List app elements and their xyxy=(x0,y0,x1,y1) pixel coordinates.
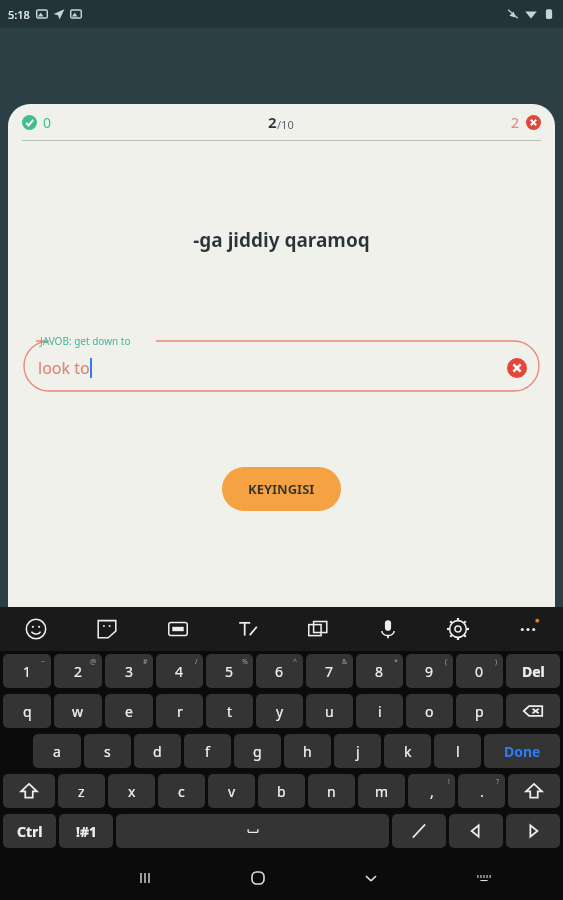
staticText: !#1 xyxy=(76,822,97,841)
button[interactable]: . xyxy=(458,774,505,808)
button[interactable]: x xyxy=(108,774,155,808)
staticText: u xyxy=(325,702,334,721)
button[interactable]: 3 xyxy=(105,654,153,688)
staticText: ( xyxy=(445,657,448,667)
staticText: 5:18 xyxy=(8,7,30,22)
button[interactable]: !#1 xyxy=(59,814,113,848)
button[interactable]: Recents xyxy=(89,856,201,900)
button[interactable]: Right xyxy=(506,814,560,848)
button[interactable]: Del xyxy=(506,654,560,688)
staticText: y xyxy=(276,702,284,721)
staticText: x xyxy=(128,782,136,801)
button[interactable]: Home xyxy=(201,856,314,900)
staticText: s xyxy=(104,742,111,761)
staticText: w xyxy=(72,702,84,721)
button[interactable]: n xyxy=(308,774,355,808)
staticText: look to xyxy=(38,357,90,379)
staticText: ^ xyxy=(293,657,298,667)
button[interactable]: a xyxy=(33,734,81,768)
staticText: Ctrl xyxy=(17,822,43,841)
button[interactable]: g xyxy=(234,734,281,768)
button[interactable]: h xyxy=(284,734,331,768)
staticText: * xyxy=(394,657,398,667)
button[interactable]: Space xyxy=(116,814,389,848)
staticText: 0 xyxy=(475,662,484,681)
button[interactable]: t xyxy=(206,694,253,728)
button[interactable]: v xyxy=(208,774,255,808)
button[interactable]: 8 xyxy=(356,654,403,688)
button[interactable]: 7 xyxy=(306,654,353,688)
button[interactable]: o xyxy=(406,694,453,728)
staticText: e xyxy=(125,702,133,721)
button[interactable]: 2 xyxy=(511,113,541,132)
button[interactable]: Stickers xyxy=(71,607,142,651)
staticText: 3 xyxy=(125,662,134,681)
button[interactable]: 5 xyxy=(206,654,253,688)
button[interactable]: GIF xyxy=(142,607,213,651)
staticText: g xyxy=(253,742,262,761)
staticText: KEYINGISI xyxy=(248,480,315,498)
button[interactable]: Hide keyboard xyxy=(314,856,427,900)
button[interactable]: Backspace xyxy=(506,694,560,728)
button[interactable]: Clipboard xyxy=(283,607,353,651)
button[interactable]: More xyxy=(493,607,563,651)
button[interactable]: b xyxy=(258,774,305,808)
staticText: % xyxy=(242,657,248,667)
button[interactable]: z xyxy=(58,774,105,808)
staticText: 2 xyxy=(268,112,277,132)
button[interactable]: m xyxy=(358,774,405,808)
staticText: 6 xyxy=(275,662,284,681)
staticText: p xyxy=(475,702,484,721)
button[interactable]: Emoji xyxy=(0,607,71,651)
button[interactable]: Settings xyxy=(423,607,493,651)
button[interactable]: 0 xyxy=(456,654,503,688)
button[interactable]: 4 xyxy=(156,654,203,688)
staticText: t xyxy=(227,702,233,721)
staticText: d xyxy=(153,742,162,761)
button[interactable]: Shift xyxy=(508,774,560,808)
staticText: l xyxy=(456,742,460,761)
button[interactable]: Clear xyxy=(507,358,527,378)
button[interactable]: Shift xyxy=(3,774,55,808)
button[interactable]: w xyxy=(54,694,102,728)
button[interactable]: e xyxy=(105,694,153,728)
staticText: ) xyxy=(495,657,498,667)
staticText: & xyxy=(342,657,348,667)
staticText: 0 xyxy=(43,113,52,132)
button[interactable]: i xyxy=(356,694,403,728)
staticText: -ga jiddiy qaramoq xyxy=(8,227,555,253)
button[interactable]: Switch keyboard xyxy=(427,856,540,900)
button[interactable]: Language xyxy=(392,814,446,848)
staticText: 4 xyxy=(175,662,184,681)
button[interactable]: 1 xyxy=(3,654,51,688)
button[interactable]: Ctrl xyxy=(3,814,56,848)
button[interactable]: Done xyxy=(484,734,560,768)
button[interactable]: 9 xyxy=(406,654,453,688)
staticText: b xyxy=(277,782,286,801)
button[interactable]: k xyxy=(384,734,431,768)
button[interactable]: s xyxy=(84,734,131,768)
button[interactable]: KEYINGISI xyxy=(222,467,341,511)
button[interactable]: Text edit xyxy=(213,607,283,651)
button[interactable]: q xyxy=(3,694,51,728)
staticText: v xyxy=(228,782,236,801)
button[interactable]: y xyxy=(256,694,303,728)
button[interactable]: u xyxy=(306,694,353,728)
button[interactable]: j xyxy=(334,734,381,768)
button[interactable]: Left xyxy=(449,814,503,848)
button[interactable]: c xyxy=(158,774,205,808)
staticText: Del xyxy=(522,662,545,681)
button[interactable]: f xyxy=(184,734,231,768)
button[interactable]: l xyxy=(434,734,481,768)
button[interactable]: Voice input xyxy=(353,607,423,651)
button[interactable]: 0 xyxy=(22,113,52,132)
button[interactable]: r xyxy=(156,694,203,728)
button[interactable]: d xyxy=(134,734,181,768)
staticText: 5 xyxy=(225,662,234,681)
staticText: f xyxy=(205,742,210,761)
staticText: , xyxy=(430,782,434,801)
button[interactable]: , xyxy=(408,774,455,808)
button[interactable]: p xyxy=(456,694,503,728)
button[interactable]: 2 xyxy=(54,654,102,688)
button[interactable]: 6 xyxy=(256,654,303,688)
